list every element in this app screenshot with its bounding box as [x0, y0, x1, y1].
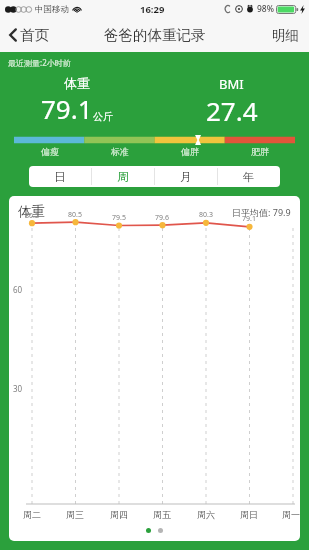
staticText: 30 [13, 383, 23, 394]
button[interactable]: 周 [92, 166, 154, 187]
staticText: 79.1 [41, 91, 93, 126]
staticText: 最近测量:2小时前 [8, 57, 71, 68]
staticText: 80.5 [68, 210, 82, 220]
staticText: 月 [180, 170, 192, 184]
staticText: 周六 [197, 509, 215, 520]
staticText: 中国移动 [35, 4, 69, 15]
staticText: 27.4 [206, 93, 258, 128]
staticText: 标准 [111, 146, 129, 157]
staticText: 60 [13, 284, 23, 295]
staticText: 周五 [153, 509, 171, 520]
staticText: 公斤 [93, 110, 113, 123]
button[interactable]: 首页 [6, 20, 52, 50]
staticText: 80.2 [25, 211, 39, 221]
staticText: 年 [243, 170, 255, 184]
staticText: 日 [54, 170, 66, 184]
staticText: 16:29 [140, 3, 165, 16]
staticText: 爸爸的体重记录 [104, 26, 206, 44]
staticText: 周四 [110, 509, 128, 520]
staticText: 79.5 [112, 213, 126, 223]
staticText: 80.3 [199, 210, 213, 220]
button[interactable]: 明细 [268, 21, 303, 50]
button[interactable]: 日 [29, 166, 91, 187]
button[interactable]: 月 [155, 166, 217, 187]
staticText: 周日 [240, 509, 258, 520]
staticText: 98% [257, 3, 274, 15]
staticText: 周 [117, 170, 129, 184]
staticText: 周三 [66, 509, 84, 520]
staticText: 体重 [64, 75, 90, 91]
staticText: 明细 [272, 27, 299, 44]
staticText: 肥胖 [251, 146, 269, 157]
staticText: 偏胖 [181, 146, 199, 157]
staticText: 日平均值: 79.9 [232, 206, 291, 218]
staticText: 79.1 [242, 214, 256, 224]
staticText: 首页 [20, 26, 49, 44]
button[interactable]: 年 [218, 166, 280, 187]
staticText: 周二 [23, 509, 41, 520]
staticText: 体重 [18, 203, 45, 220]
staticText: BMI [219, 75, 244, 93]
staticText: 周一 [282, 509, 300, 520]
staticText: 79.6 [155, 213, 169, 223]
staticText: 偏瘦 [41, 146, 59, 157]
